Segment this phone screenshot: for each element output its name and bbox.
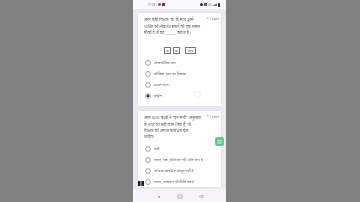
staticText: 7:19 [148, 2, 156, 7]
staticText: समान भाव [154, 82, 169, 87]
button[interactable]: Back [196, 192, 205, 201]
staticText: क [166, 48, 169, 53]
button[interactable]: शब्द [185, 47, 196, 54]
staticText: लोकतांत्रिक मान [154, 60, 176, 65]
button[interactable]: लोकिक भाव का विकास [145, 68, 222, 79]
button[interactable]: Home [175, 192, 184, 201]
staticText: लोकिक भाव का विकास [154, 71, 187, 76]
button[interactable]: कोईन [145, 90, 222, 101]
button[interactable]: क [164, 47, 171, 54]
button[interactable]: Chat [215, 137, 224, 146]
staticText: 4G [208, 3, 212, 7]
staticText: * 1 point [207, 17, 220, 21]
staticText: अगर 50% बच्चों ने "इन सभी" अनुसरण के रूप… [144, 115, 204, 139]
button[interactable]: अन्यथा कार्यक्रम मौजूद नहीं है [145, 165, 222, 176]
button[interactable]: गलत, अध्ययन गतिविधि कराएं [145, 176, 222, 187]
button[interactable]: सही [145, 143, 222, 154]
staticText: अन्यथा कार्यक्रम मौजूद नहीं है [154, 168, 194, 173]
button[interactable]: समान भाव [145, 79, 222, 90]
staticText: सही [154, 146, 160, 151]
button[interactable]: लोकतांत्रिक मान [145, 57, 222, 68]
staticText: शब्द [188, 48, 194, 53]
staticText: गलत, अध्ययन गतिविधि कराएं [154, 179, 195, 184]
staticText: गलत, एक, बच्चे को नहीं उत्तर देना है [154, 157, 203, 162]
staticText: कोईन [154, 93, 162, 98]
button[interactable]: गलत, एक, बच्चे को नहीं उत्तर देना है [145, 154, 222, 165]
staticText: * 1 point [207, 115, 220, 119]
button[interactable]: Recents [154, 192, 163, 201]
staticText: ख [175, 48, 178, 53]
staticText: अगर कोई शिक्षक 'क' के साथ दूसरे व्यक्ति … [144, 17, 202, 35]
button[interactable]: ख [173, 47, 180, 54]
